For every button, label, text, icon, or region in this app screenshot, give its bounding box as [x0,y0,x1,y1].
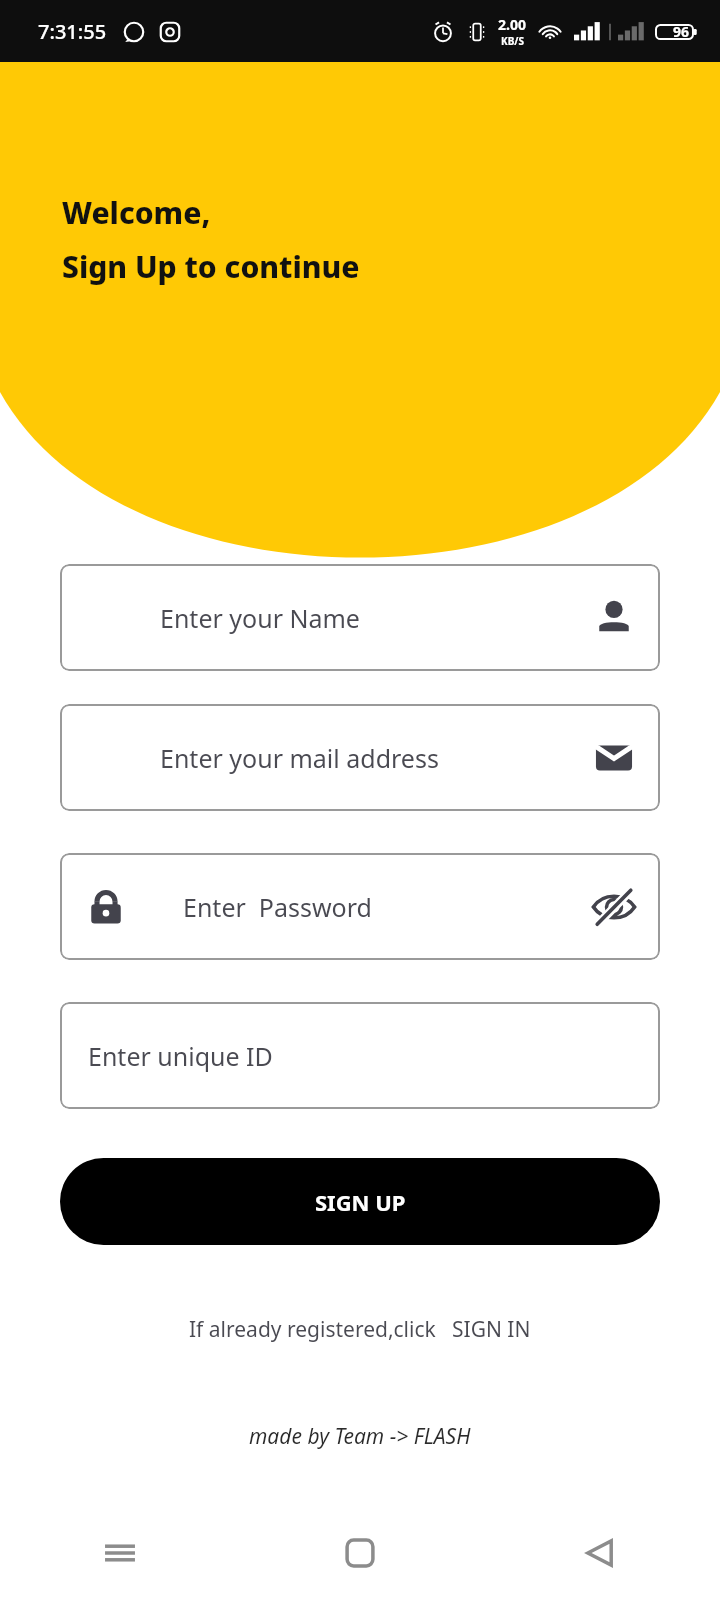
staticText: Enter your Name [160,601,360,635]
button[interactable]: Toggle password visibility [590,734,638,782]
staticText: 96 [673,22,690,41]
button[interactable]: Recent apps [0,1506,240,1600]
button[interactable]: Enter your mail address [60,704,660,811]
staticText: SIGN IN [452,1315,531,1344]
button[interactable]: Back [480,1506,720,1600]
button[interactable]: Enter unique ID [60,1002,660,1109]
staticText: Enter unique ID [88,1039,273,1073]
staticText: 2.00 [498,15,526,34]
staticText: Enter your mail address [160,741,439,775]
staticText: SIGN UP [315,1187,406,1217]
button[interactable]: Toggle password visibility [590,883,638,931]
button[interactable]: Toggle password visibility [590,594,638,642]
staticText: Welcome, [62,192,211,233]
button[interactable]: Home [240,1506,480,1600]
button[interactable]: If already registered,click [0,1315,720,1344]
staticText: KB/S [501,34,524,48]
staticText: Enter Password [183,890,372,924]
staticText: If already registered,click [189,1315,436,1344]
button[interactable]: SIGN UP [60,1158,660,1245]
button[interactable]: Enter your Name [60,564,660,671]
button[interactable]: Enter Password [60,853,660,960]
staticText: 7:31:55 [38,18,107,45]
staticText: Sign Up to continue [62,246,360,287]
staticText: made by Team -> FLASH [249,1422,471,1451]
